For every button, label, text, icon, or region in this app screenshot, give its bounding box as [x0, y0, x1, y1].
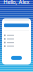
staticText: Hello, Alex [3, 0, 29, 5]
